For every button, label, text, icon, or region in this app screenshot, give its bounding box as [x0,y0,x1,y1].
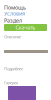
button[interactable]: Скачать [4,24,47,31]
staticText: Описание [4,34,21,39]
staticText: Подробнее [4,66,23,71]
staticText: Раздел [4,17,22,24]
staticText: Галерея [4,80,18,85]
staticText: Помощь [4,4,26,11]
staticText: Условия [4,10,25,17]
staticText: Скачать [15,24,35,31]
